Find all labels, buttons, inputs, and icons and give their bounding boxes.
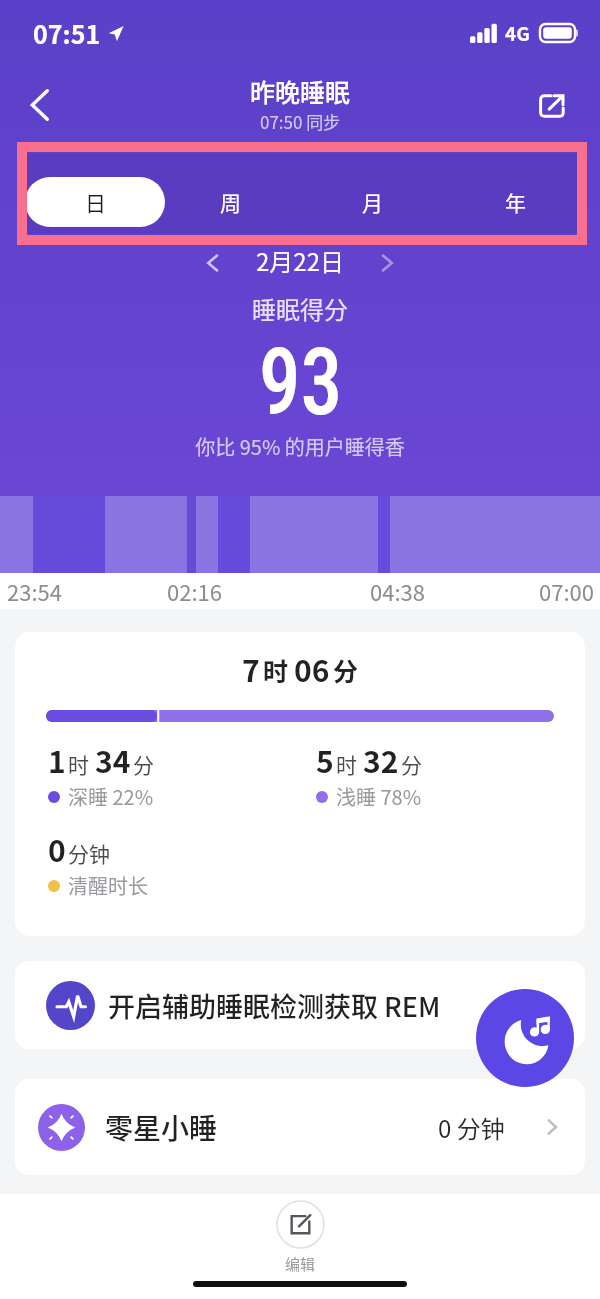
button[interactable]: Back (20, 83, 64, 127)
staticText: 07:51 (33, 15, 101, 51)
staticText: 4G (505, 19, 530, 47)
staticText: 04:38 (370, 575, 425, 607)
staticText: 07:50 同步 (260, 109, 341, 134)
button[interactable]: 开启辅助睡眠检测获取 REM (15, 961, 585, 1049)
button[interactable]: 周 (159, 177, 301, 227)
button[interactable]: 日 (25, 177, 165, 227)
staticText: 睡眠得分 (0, 291, 600, 326)
staticText: 深睡 22% (68, 782, 154, 811)
staticText: 分钟 (68, 838, 110, 868)
staticText: 周 (220, 187, 241, 217)
staticText: 02:16 (167, 575, 222, 607)
staticText: 月 (362, 187, 383, 217)
button[interactable]: Previous day (196, 246, 230, 280)
staticText: 零星小睡 (105, 1107, 218, 1148)
button[interactable]: 年 (444, 177, 587, 227)
staticText: 34 (95, 738, 131, 781)
staticText: 时 (68, 749, 89, 779)
staticText: 清醒时长 (68, 871, 148, 900)
staticText: 开启辅助睡眠检测获取 REM (108, 986, 441, 1025)
staticText: 你比 95% 的用户睡得香 (0, 432, 600, 461)
staticText: 年 (505, 187, 526, 217)
staticText: 时 (336, 749, 357, 779)
staticText: 07:00 (539, 575, 594, 607)
staticText: 时 (263, 652, 289, 688)
staticText: 日 (85, 187, 106, 217)
staticText: 93 (259, 328, 342, 437)
staticText: 昨晚睡眠 (250, 73, 351, 109)
staticText: 编辑 (20, 1253, 580, 1275)
staticText: 32 (363, 738, 399, 781)
staticText: 5 (316, 738, 334, 781)
button[interactable]: Next day (370, 246, 404, 280)
staticText: 分 (333, 652, 359, 688)
button[interactable]: 零星小睡 (15, 1079, 585, 1175)
button[interactable]: Sleep music (476, 989, 574, 1087)
staticText: 06 (294, 647, 330, 690)
button[interactable]: 月 (301, 177, 444, 227)
staticText: 7 (242, 647, 260, 690)
staticText: 0 (48, 827, 66, 870)
staticText: 2月22日 (256, 243, 344, 278)
button[interactable]: 编辑 (0, 1198, 600, 1277)
staticText: 23:54 (7, 575, 62, 607)
staticText: 分 (133, 749, 154, 779)
staticText: 1 (48, 738, 66, 781)
staticText: 0 分钟 (438, 1110, 505, 1145)
staticText: 浅睡 78% (336, 782, 422, 811)
button[interactable]: Share (532, 86, 572, 126)
staticText: 分 (401, 749, 422, 779)
